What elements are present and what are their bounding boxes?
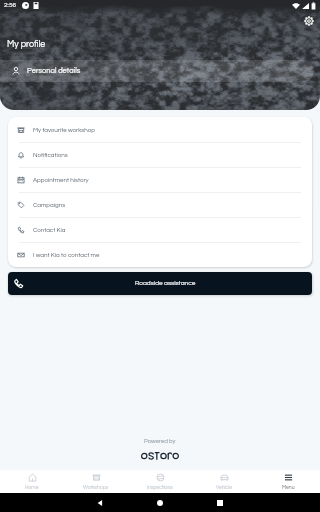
staticText: I want Kia to contact me (33, 252, 100, 258)
button[interactable]: My favourite workshop (8, 117, 312, 142)
other: Home (157, 500, 163, 506)
button[interactable]: Vehicle (192, 470, 256, 493)
staticText: Notifications (33, 152, 68, 158)
button[interactable]: Campaigns (8, 192, 312, 217)
button[interactable]: Appointment history (8, 167, 312, 192)
button[interactable]: I want Kia to contact me (8, 242, 312, 267)
button[interactable]: Inspections (128, 470, 192, 493)
button[interactable]: Home (0, 470, 64, 493)
staticText: Contact Kia (33, 227, 66, 233)
staticText: Vehicle (216, 485, 233, 490)
button[interactable]: Menu (256, 470, 320, 493)
button[interactable]: Contact Kia (8, 217, 312, 242)
staticText: My profile (7, 40, 46, 49)
staticText: Roadside assistance (135, 280, 196, 287)
staticText: Workshops (83, 485, 109, 490)
staticText: Home (25, 485, 39, 490)
staticText: Powered by (144, 438, 176, 444)
button[interactable]: Roadside assistance (8, 272, 312, 295)
button[interactable]: Notifications (8, 142, 312, 167)
button[interactable]: Workshops (64, 470, 128, 493)
staticText: Personal details (27, 67, 81, 75)
other: Back (97, 500, 103, 506)
staticText: Appointment history (33, 177, 89, 183)
staticText: Inspections (147, 485, 173, 490)
staticText: Campaigns (33, 202, 66, 208)
staticText: My favourite workshop (33, 127, 95, 133)
button[interactable]: Settings (301, 13, 317, 29)
button[interactable]: Personal details (0, 60, 314, 82)
staticText: Menu (282, 485, 295, 490)
staticText: 2:56 (4, 2, 17, 9)
